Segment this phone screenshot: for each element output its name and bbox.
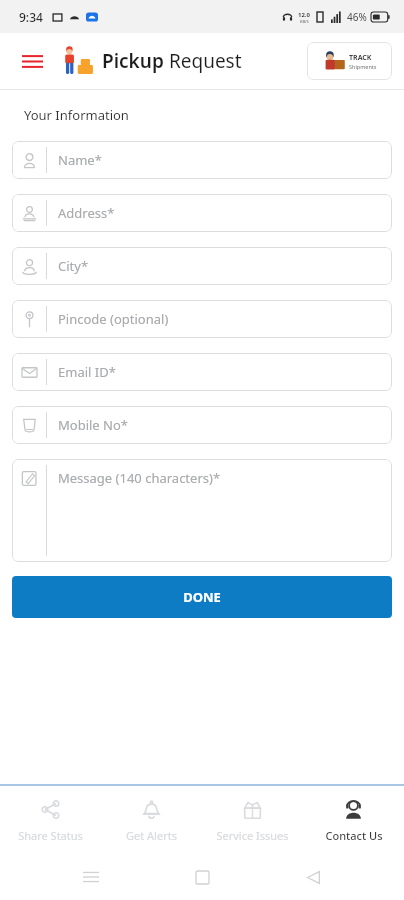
- button[interactable]: Name*: [12, 141, 392, 179]
- staticText: Pincode (optional): [58, 310, 169, 328]
- staticText: Request: [164, 48, 242, 74]
- staticText: TRACK: [349, 53, 372, 63]
- button[interactable]: Pincode (optional): [12, 300, 392, 338]
- staticText: 12.0: [298, 11, 310, 19]
- staticText: Message (140 characters)*: [58, 469, 221, 487]
- button[interactable]: Home: [182, 857, 222, 897]
- staticText: Contact Us: [325, 828, 383, 843]
- staticText: Mobile No*: [58, 416, 128, 434]
- button[interactable]: DONE: [12, 576, 392, 618]
- button[interactable]: Menu: [12, 41, 52, 81]
- button[interactable]: Message (140 characters)*: [12, 459, 392, 562]
- button[interactable]: Address*: [12, 194, 392, 232]
- staticText: Service Issues: [216, 828, 289, 843]
- button[interactable]: Get Alerts: [101, 786, 202, 854]
- staticText: Address*: [58, 204, 115, 222]
- staticText: Your Information: [24, 106, 129, 124]
- button[interactable]: Share Status: [0, 786, 101, 854]
- button[interactable]: City*: [12, 247, 392, 285]
- button[interactable]: Mobile No*: [12, 406, 392, 444]
- staticText: Shipments: [349, 63, 377, 70]
- button[interactable]: Email ID*: [12, 353, 392, 391]
- button[interactable]: Contact Us: [303, 786, 404, 854]
- staticText: KB/S: [300, 19, 309, 24]
- staticText: Pickup: [102, 48, 164, 74]
- staticText: Email ID*: [58, 363, 116, 381]
- staticText: Share Status: [18, 828, 83, 843]
- button[interactable]: Back: [293, 857, 333, 897]
- staticText: Name*: [58, 151, 102, 169]
- staticText: DONE: [183, 588, 221, 606]
- button[interactable]: Service Issues: [202, 786, 303, 854]
- staticText: 9:34: [19, 9, 43, 25]
- button[interactable]: Recents: [71, 857, 111, 897]
- staticText: Get Alerts: [126, 828, 177, 843]
- staticText: 46%: [347, 10, 367, 24]
- staticText: City*: [58, 257, 89, 275]
- button[interactable]: TRACK: [307, 42, 392, 80]
